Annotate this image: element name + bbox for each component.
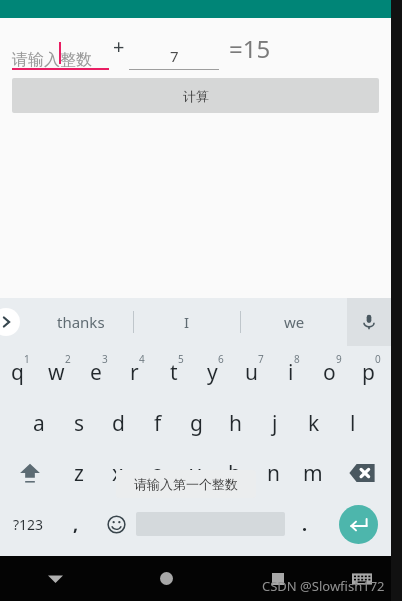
button[interactable]: Emoji	[96, 498, 136, 550]
button[interactable]: Home	[111, 556, 222, 601]
button[interactable]: j	[255, 398, 294, 448]
button[interactable]: Backspace	[332, 448, 391, 498]
staticText: c	[151, 459, 162, 488]
staticText: l	[350, 409, 356, 438]
button[interactable]: k	[294, 398, 333, 448]
staticText: ?123	[13, 515, 44, 534]
staticText: i	[288, 358, 294, 387]
button[interactable]: 7	[129, 32, 219, 70]
button[interactable]: o	[313, 346, 352, 398]
button[interactable]: I	[134, 298, 240, 346]
button[interactable]: Shift	[0, 448, 59, 498]
button[interactable]: h	[216, 398, 255, 448]
staticText: 计算	[183, 88, 209, 104]
staticText: d	[112, 409, 125, 438]
staticText: +	[113, 33, 125, 60]
staticText: g	[190, 409, 203, 438]
staticText: 0	[375, 352, 381, 366]
button[interactable]: x	[98, 448, 137, 498]
button[interactable]: t	[157, 346, 196, 398]
staticText: CSDN @Slowfish172	[262, 577, 385, 595]
button[interactable]: .	[285, 498, 325, 550]
staticText: 9	[336, 352, 342, 366]
button[interactable]: z	[59, 448, 98, 498]
button[interactable]: thanks	[28, 298, 133, 346]
button[interactable]: More options	[0, 308, 20, 336]
staticText: we	[284, 312, 305, 332]
button[interactable]: Voice input	[347, 298, 391, 346]
staticText: 2	[65, 352, 71, 366]
button[interactable]: v	[176, 448, 215, 498]
staticText: f	[154, 409, 162, 438]
button[interactable]: a	[19, 398, 59, 448]
staticText: u	[245, 358, 258, 387]
staticText: ,	[73, 512, 79, 537]
button[interactable]: w	[40, 346, 79, 398]
button[interactable]: Switch keyboard	[333, 556, 391, 601]
button[interactable]: i	[274, 346, 313, 398]
staticText: r	[130, 358, 139, 387]
staticText: w	[48, 358, 65, 387]
staticText: o	[323, 358, 336, 387]
staticText: m	[303, 459, 323, 488]
staticText: thanks	[57, 312, 105, 332]
button[interactable]: q	[0, 346, 40, 398]
staticText: k	[308, 409, 320, 438]
staticText: z	[74, 459, 84, 488]
button[interactable]: g	[177, 398, 216, 448]
staticText: b	[228, 459, 241, 488]
staticText: a	[33, 409, 45, 438]
staticText: =15	[229, 32, 271, 64]
button[interactable]: m	[293, 448, 332, 498]
staticText: h	[229, 409, 242, 438]
staticText: .	[302, 512, 308, 537]
staticText: p	[362, 358, 375, 387]
button[interactable]: ?123	[0, 498, 56, 550]
button[interactable]: b	[215, 448, 254, 498]
button[interactable]: e	[79, 346, 118, 398]
staticText: 7	[258, 352, 264, 366]
staticText: 4	[139, 352, 145, 366]
staticText: e	[90, 358, 102, 387]
button[interactable]: f	[138, 398, 177, 448]
staticText: 请输入第一个整数	[134, 476, 238, 492]
button[interactable]: 请输入整数	[12, 32, 109, 70]
button[interactable]: d	[99, 398, 138, 448]
staticText: j	[272, 409, 278, 438]
button[interactable]: n	[254, 448, 293, 498]
staticText: 6	[218, 352, 224, 366]
button[interactable]: Enter	[325, 498, 391, 550]
staticText: x	[112, 459, 124, 488]
staticText: 5	[178, 352, 184, 366]
button[interactable]: u	[235, 346, 274, 398]
button[interactable]: y	[196, 346, 235, 398]
button[interactable]: l	[333, 398, 372, 448]
staticText: v	[190, 459, 201, 488]
button[interactable]: we	[241, 298, 347, 346]
button[interactable]: Back	[0, 556, 111, 601]
button[interactable]: p	[352, 346, 391, 398]
button[interactable]: s	[59, 398, 99, 448]
staticText: 7	[170, 46, 179, 66]
button[interactable]: ,	[56, 498, 96, 550]
staticText: 8	[294, 352, 300, 366]
button[interactable]: r	[118, 346, 157, 398]
staticText: n	[267, 459, 280, 488]
staticText: y	[207, 358, 218, 387]
button[interactable]: Recent apps	[222, 556, 333, 601]
staticText: 3	[102, 352, 108, 366]
staticText: q	[11, 358, 24, 387]
staticText: t	[170, 358, 178, 387]
button[interactable]: c	[137, 448, 176, 498]
staticText: I	[184, 312, 190, 332]
button[interactable]: 计算	[12, 78, 379, 113]
staticText: s	[74, 409, 85, 438]
staticText: 请输入整数	[12, 50, 92, 70]
staticText: 1	[24, 352, 30, 366]
